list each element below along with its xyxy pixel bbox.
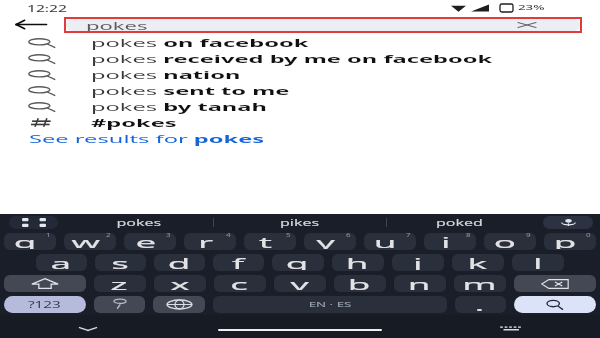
button[interactable]: v bbox=[274, 275, 326, 292]
button[interactable]: i bbox=[424, 233, 476, 250]
staticText: u bbox=[374, 233, 398, 249]
staticText: pokes nation bbox=[91, 67, 241, 82]
button[interactable]: z bbox=[94, 275, 146, 292]
staticText: s bbox=[111, 254, 131, 270]
staticText: 1 bbox=[46, 233, 51, 239]
button[interactable]: u bbox=[364, 233, 416, 250]
button[interactable]: c bbox=[214, 275, 266, 292]
staticText: t bbox=[259, 233, 273, 249]
button[interactable]: Clear bbox=[515, 19, 539, 31]
button[interactable]: pokes bbox=[95, 214, 183, 231]
button[interactable]: poked bbox=[416, 214, 504, 231]
staticText: 4 bbox=[226, 233, 231, 239]
button[interactable]: e bbox=[124, 233, 176, 250]
button[interactable]: Backspace bbox=[514, 275, 596, 292]
staticText: pokes on facebook bbox=[91, 35, 310, 50]
button[interactable]: pokes sent to me bbox=[0, 82, 600, 98]
button[interactable]: d bbox=[154, 254, 205, 271]
button[interactable]: Back bbox=[15, 16, 55, 33]
button[interactable]: Search bbox=[514, 296, 596, 313]
button[interactable]: pokes bbox=[66, 19, 580, 31]
button[interactable]: t bbox=[244, 233, 296, 250]
staticText: b bbox=[348, 275, 372, 291]
staticText: 23% bbox=[518, 3, 545, 13]
button[interactable]: o bbox=[484, 233, 536, 250]
button[interactable]: k bbox=[452, 254, 504, 271]
staticText: ?123 bbox=[28, 299, 62, 310]
button[interactable]: Shift bbox=[4, 275, 86, 292]
button[interactable]: Switch keyboard bbox=[491, 322, 531, 334]
staticText: f bbox=[232, 254, 246, 270]
staticText: r bbox=[198, 233, 215, 249]
staticText: poked bbox=[436, 217, 484, 228]
staticText: 0 bbox=[586, 233, 591, 239]
button[interactable]: r bbox=[184, 233, 236, 250]
button[interactable]: a bbox=[36, 254, 87, 271]
button[interactable]: . bbox=[455, 296, 506, 313]
button[interactable]: h bbox=[332, 254, 384, 271]
staticText: . bbox=[474, 296, 487, 312]
button[interactable]: pokes received by me on facebook bbox=[0, 50, 600, 66]
staticText: e bbox=[135, 233, 157, 249]
button[interactable]: #pokes bbox=[0, 114, 600, 130]
staticText: 6 bbox=[346, 233, 351, 239]
staticText: pikes bbox=[280, 217, 320, 228]
staticText: h bbox=[346, 254, 370, 270]
button[interactable]: g bbox=[272, 254, 324, 271]
staticText: m bbox=[462, 275, 499, 291]
staticText: #pokes bbox=[91, 115, 177, 130]
button[interactable]: Voice input bbox=[543, 216, 593, 229]
button[interactable]: y bbox=[304, 233, 356, 250]
staticText: q bbox=[14, 233, 38, 249]
button[interactable]: w bbox=[64, 233, 116, 250]
button[interactable]: p bbox=[544, 233, 596, 250]
button[interactable]: pokes on facebook bbox=[0, 34, 600, 50]
button[interactable]: Toolbar bbox=[9, 216, 58, 229]
staticText: y bbox=[316, 233, 336, 249]
button[interactable]: Hide keyboard bbox=[72, 323, 104, 335]
staticText: 3 bbox=[166, 233, 171, 239]
staticText: pokes bbox=[116, 217, 162, 228]
staticText: o bbox=[494, 233, 518, 249]
button[interactable]: f bbox=[213, 254, 264, 271]
button[interactable]: Change language bbox=[153, 296, 205, 313]
staticText: z bbox=[110, 275, 130, 291]
staticText: k bbox=[467, 254, 489, 270]
staticText: 9 bbox=[526, 233, 531, 239]
staticText: 7 bbox=[406, 233, 411, 239]
staticText: pokes bbox=[86, 19, 148, 31]
button[interactable]: pokes nation bbox=[0, 66, 600, 82]
button[interactable]: x bbox=[154, 275, 206, 292]
staticText: p bbox=[554, 233, 578, 249]
button[interactable]: pokes by tanah bbox=[0, 98, 600, 114]
staticText: d bbox=[168, 254, 192, 270]
staticText: x bbox=[170, 275, 190, 291]
staticText: pokes by tanah bbox=[91, 99, 267, 114]
staticText: a bbox=[50, 254, 73, 270]
button[interactable]: pikes bbox=[256, 214, 344, 231]
button[interactable]: j bbox=[392, 254, 444, 271]
button[interactable]: See results for pokes bbox=[0, 130, 600, 146]
staticText: v bbox=[290, 275, 310, 291]
button[interactable]: EN · ES bbox=[213, 296, 447, 313]
staticText: 8 bbox=[466, 233, 471, 239]
staticText: pokes received by me on facebook bbox=[91, 51, 493, 66]
button[interactable]: q bbox=[4, 233, 56, 250]
staticText: EN · ES bbox=[309, 300, 352, 310]
staticText: g bbox=[286, 254, 310, 270]
button[interactable]: ?123 bbox=[4, 296, 86, 313]
button[interactable]: n bbox=[394, 275, 446, 292]
staticText: i bbox=[441, 233, 451, 249]
staticText: 5 bbox=[286, 233, 291, 239]
button[interactable]: l bbox=[512, 254, 564, 271]
button[interactable]: s bbox=[95, 254, 146, 271]
button[interactable]: b bbox=[334, 275, 386, 292]
button[interactable]: m bbox=[454, 275, 506, 292]
staticText: 2 bbox=[106, 233, 111, 239]
staticText: n bbox=[408, 275, 432, 291]
staticText: pokes sent to me bbox=[91, 83, 291, 98]
staticText: 12:22 bbox=[27, 3, 68, 14]
button[interactable]: Emoji bbox=[94, 296, 145, 313]
staticText: c bbox=[230, 275, 250, 291]
staticText: w bbox=[71, 233, 101, 249]
